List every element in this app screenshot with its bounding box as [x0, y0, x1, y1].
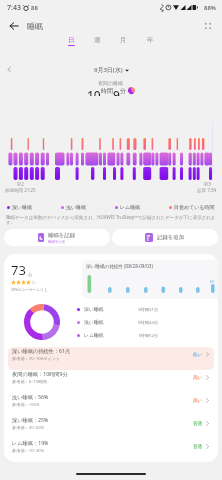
staticText: 参考値：<55%: [12, 402, 40, 408]
button[interactable]: Previous day: [4, 64, 15, 75]
staticText: 9月3日(水): [94, 66, 123, 74]
staticText: 参考値：6~10時間: [12, 379, 47, 385]
staticText: 点: [28, 272, 33, 277]
staticText: 5時間44分: [138, 319, 159, 325]
staticText: 29%のユーザーより上: [11, 287, 48, 292]
staticText: 夜間の睡眠：10時間9分: [12, 370, 68, 377]
staticText: 週: [94, 36, 101, 44]
staticText: レム睡眠: [84, 332, 104, 338]
staticText: 浅い睡眠: [66, 204, 87, 210]
staticText: 88: [31, 4, 38, 12]
staticText: 参考値：70~100ポイント: [12, 356, 61, 362]
staticText: 起床 7:34: [197, 187, 217, 193]
staticText: 普通: [193, 444, 203, 450]
staticText: 睡眠を記録: [48, 232, 76, 239]
button[interactable]: 週: [84, 36, 110, 46]
staticText: 9/2: [17, 181, 24, 187]
staticText: 深い睡眠：25%: [12, 416, 49, 423]
staticText: 睡眠中の音: [48, 240, 66, 244]
staticText: 参考値：10~30%: [12, 448, 45, 454]
button[interactable]: 深い睡眠：25%: [8, 416, 214, 439]
button[interactable]: 月: [110, 36, 137, 46]
staticText: 睡眠データは複数のデバイスから収集され、HUAWEI TruSleep™で記録さ…: [6, 214, 216, 226]
button[interactable]: 年: [137, 36, 164, 46]
staticText: 2時間31分: [138, 306, 159, 312]
staticText: 73: [11, 261, 26, 279]
staticText: 深い睡眠の持続性：61点: [12, 347, 71, 354]
button[interactable]: 深い睡眠の持続性：61点: [8, 347, 214, 370]
staticText: 睡眠: [27, 21, 43, 31]
button[interactable]: Back: [6, 18, 22, 34]
button[interactable]: More options: [200, 18, 216, 34]
staticText: 時間: [101, 87, 113, 95]
button[interactable]: 睡眠を記録: [4, 229, 110, 246]
staticText: 低い: [193, 352, 203, 358]
staticText: 深い睡眠の持続性 (08/28-09/03): [86, 263, 153, 269]
button[interactable]: レム睡眠：19%: [8, 439, 214, 462]
staticText: 夜間の睡眠: [98, 80, 124, 86]
staticText: 分: [120, 87, 126, 95]
staticText: 就寝時間 21:25: [5, 187, 36, 193]
button[interactable]: 夜間の睡眠：10時間9分: [8, 370, 214, 393]
staticText: 高い: [193, 375, 203, 381]
staticText: 浅い睡眠: [84, 319, 104, 325]
staticText: 浅い睡眠：56%: [12, 393, 49, 400]
staticText: 88%: [204, 4, 216, 12]
staticText: レム睡眠：19%: [12, 439, 49, 446]
staticText: 深い睡眠: [12, 204, 33, 210]
staticText: レム睡眠: [120, 204, 141, 210]
staticText: 深い睡眠: [84, 306, 104, 312]
staticText: 普通: [193, 421, 203, 427]
staticText: 記録を追加: [157, 234, 185, 241]
staticText: 月: [120, 36, 127, 44]
staticText: 目覚めている時間: [174, 204, 215, 210]
staticText: 高い: [193, 398, 203, 404]
staticText: 1時間52分: [138, 332, 159, 338]
staticText: 10: [87, 87, 101, 96]
staticText: 参考値：20~60%: [12, 425, 45, 431]
staticText: 9: [113, 87, 120, 96]
button[interactable]: 記録を追加: [112, 229, 218, 246]
button[interactable]: 日: [58, 36, 84, 46]
staticText: 7:43: [7, 3, 21, 13]
staticText: 年: [147, 36, 154, 44]
staticText: 日: [68, 36, 75, 44]
staticText: 61: [210, 279, 214, 284]
button[interactable]: 浅い睡眠：56%: [8, 393, 214, 416]
staticText: 9/3: [204, 181, 211, 187]
